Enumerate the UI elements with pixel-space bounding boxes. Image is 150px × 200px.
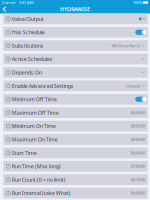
staticText: 100%: [133, 0, 142, 5]
staticText: 07:00:00: [131, 164, 145, 169]
staticText: Carrier: [2, 0, 16, 5]
staticText: 1: [143, 16, 145, 21]
staticText: Run Count (0 = no limit): [12, 176, 66, 183]
staticText: Active Schedules: [12, 55, 53, 63]
staticText: 00:00:00: [131, 123, 145, 129]
button[interactable]: Active Schedules: [3, 54, 148, 64]
staticText: T46 Drive Part 2: [111, 43, 139, 48]
staticText: Unused: [126, 83, 139, 88]
staticText: 00:10:00: [131, 177, 145, 182]
button[interactable]: Enable Advanced Settings: [3, 80, 148, 91]
button[interactable]: Start Time: [3, 147, 148, 158]
staticText: Maximum On Time: [12, 136, 58, 143]
button[interactable]: Has Schedule: [3, 27, 148, 38]
button[interactable]: Maximum On Time: [3, 134, 148, 145]
button[interactable]: Run Interval (take What): [3, 188, 148, 198]
staticText: 9:41 AM: [19, 0, 34, 5]
button[interactable]: Valve/Output: [3, 13, 148, 24]
button[interactable]: Run Time (Max long): [3, 161, 148, 172]
staticText: 00:00:00: [131, 110, 145, 115]
staticText: Substitutions: [12, 42, 44, 49]
staticText: Depends On: [12, 69, 42, 76]
staticText: Start Time: [12, 149, 37, 156]
button[interactable]: Back: [0, 5, 8, 13]
button[interactable]: Maximum Off Time: [3, 107, 148, 118]
staticText: HYDRAWISE: [60, 6, 90, 13]
button[interactable]: Minimum Off Time: [3, 94, 148, 105]
staticText: Minimum On Time: [12, 122, 56, 130]
staticText: 00:00:00: [131, 137, 145, 142]
staticText: Valve/Output: [12, 15, 44, 22]
staticText: 00:00:00: [131, 190, 145, 196]
staticText: Enable Advanced Settings: [12, 82, 74, 89]
button[interactable]: Depends On: [3, 67, 148, 78]
staticText: Has Schedule: [12, 29, 45, 36]
staticText: Maximum Off Time: [12, 109, 59, 116]
staticText: Run Interval (take What): [12, 189, 71, 197]
button[interactable]: Substitutions: [3, 40, 148, 51]
button[interactable]: Run Count (0 = no limit): [3, 174, 148, 185]
staticText: Minimum Off Time: [12, 96, 57, 103]
staticText: Run Time (Max long): [12, 163, 61, 170]
staticText: 00:00:00: [131, 150, 145, 155]
button[interactable]: Minimum On Time: [3, 121, 148, 131]
